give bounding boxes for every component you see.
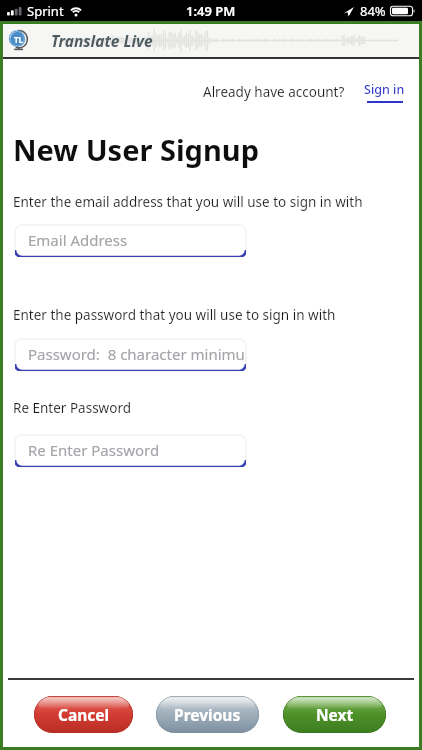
staticText: Sprint (27, 2, 64, 20)
button[interactable]: Previous (156, 696, 259, 733)
staticText: Enter the password that you will use to … (13, 306, 336, 324)
staticText: New User Signup (13, 130, 259, 169)
staticText: Email Address (28, 230, 128, 250)
staticText: Enter the email address that you will us… (13, 193, 363, 211)
staticText: Cancel (58, 704, 110, 725)
button[interactable]: Sign in (364, 81, 405, 103)
staticText: TL (14, 34, 24, 45)
staticText: Re Enter Password (13, 399, 132, 417)
staticText: Password: 8 character minimu (28, 344, 245, 364)
staticText: Re Enter Password (28, 440, 160, 460)
button[interactable]: Cancel (34, 696, 133, 733)
button[interactable]: Password: 8 character minimu (15, 339, 246, 371)
staticText: Translate Live (51, 30, 153, 51)
staticText: Already have account? (203, 83, 345, 101)
button[interactable]: Re Enter Password (15, 435, 246, 467)
button[interactable]: Next (283, 696, 386, 733)
staticText: Sign in (364, 81, 405, 98)
staticText: 84% (360, 2, 386, 20)
staticText: Next (316, 704, 354, 725)
staticText: 1:49 PM (186, 2, 236, 20)
button[interactable]: Email Address (15, 225, 246, 257)
staticText: Previous (174, 704, 241, 725)
